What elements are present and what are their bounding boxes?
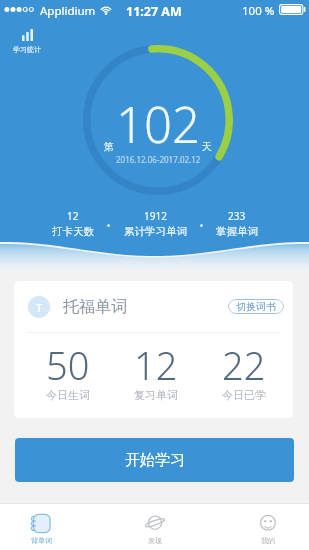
button[interactable]: 背单词 — [21, 510, 61, 548]
staticText: 233 — [228, 209, 246, 223]
staticText: 12 — [67, 209, 79, 223]
staticText: 学习统计 — [13, 45, 41, 54]
staticText: 背单词 — [31, 536, 52, 545]
staticText: 102 — [116, 91, 200, 158]
button[interactable]: 我的 — [248, 510, 288, 548]
staticText: 50 — [46, 339, 90, 391]
button[interactable]: 开始学习 — [15, 438, 294, 482]
staticText: 100 % — [242, 3, 275, 19]
button[interactable]: 切换词书 — [228, 299, 284, 314]
staticText: 2016.12.06-2017.02.12 — [116, 154, 201, 165]
staticText: 第 — [104, 140, 114, 153]
staticText: 22 — [222, 339, 266, 391]
staticText: 11:27 AM — [126, 3, 182, 20]
staticText: 累计学习单词 — [124, 225, 187, 238]
staticText: 1912 — [144, 209, 167, 223]
staticText: 天 — [202, 140, 212, 153]
staticText: 发现 — [148, 536, 162, 545]
staticText: 12 — [134, 339, 178, 391]
button[interactable]: 发现 — [135, 510, 175, 548]
staticText: 切换词书 — [236, 300, 276, 313]
staticText: Applidium — [40, 3, 96, 19]
button[interactable]: 学习统计 — [7, 27, 47, 56]
staticText: 掌握单词 — [216, 225, 258, 238]
staticText: 打卡天数 — [52, 225, 94, 238]
staticText: 开始学习 — [125, 451, 185, 470]
staticText: T — [36, 300, 43, 315]
staticText: 我的 — [261, 536, 275, 545]
staticText: 托福单词 — [63, 297, 127, 317]
staticText: 今日已学 — [222, 388, 266, 402]
staticText: 今日生词 — [46, 388, 90, 402]
staticText: 复习单词 — [134, 388, 178, 402]
